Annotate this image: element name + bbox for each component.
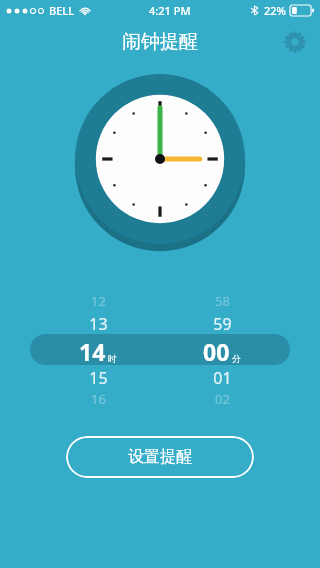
button[interactable]: 58 — [160, 290, 284, 408]
staticText: BELL — [49, 3, 75, 18]
staticText: 12 — [91, 292, 106, 310]
staticText: 闹钟提醒 — [122, 30, 198, 54]
staticText: 时 — [108, 353, 117, 364]
staticText: 分 — [232, 353, 241, 364]
staticText: 13 — [89, 313, 108, 335]
staticText: 15 — [89, 367, 108, 389]
button[interactable]: 设置提醒 — [66, 436, 254, 478]
staticText: 设置提醒 — [128, 447, 192, 467]
staticText: 14 — [79, 336, 106, 366]
staticText: 22% — [264, 3, 286, 18]
staticText: 01 — [213, 367, 232, 389]
staticText: 4:21 PM — [149, 3, 191, 18]
staticText: 00 — [203, 336, 230, 366]
button[interactable]: Settings — [278, 25, 312, 59]
button[interactable]: 12 — [36, 290, 160, 408]
staticText: 58 — [215, 292, 230, 310]
staticText: 59 — [213, 313, 232, 335]
staticText: 16 — [91, 390, 106, 408]
staticText: 02 — [215, 390, 230, 408]
